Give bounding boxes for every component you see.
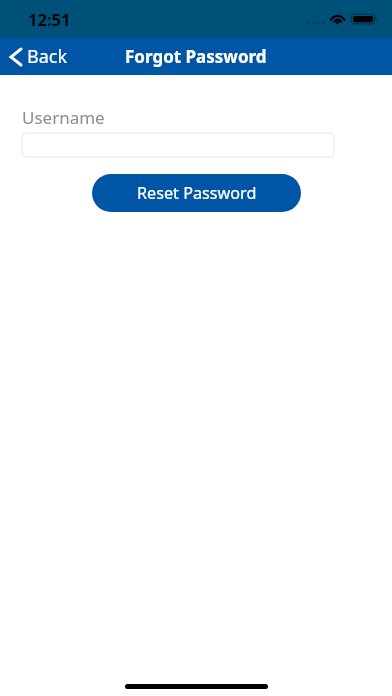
button[interactable]: Username input <box>21 132 335 158</box>
button[interactable]: Back <box>0 40 78 73</box>
staticText: Username <box>22 106 105 129</box>
button[interactable]: Reset Password <box>92 174 301 212</box>
staticText: 12:51 <box>28 8 71 30</box>
staticText: Reset Password <box>137 182 257 204</box>
staticText: Forgot Password <box>125 45 267 68</box>
staticText: Back <box>27 44 68 69</box>
